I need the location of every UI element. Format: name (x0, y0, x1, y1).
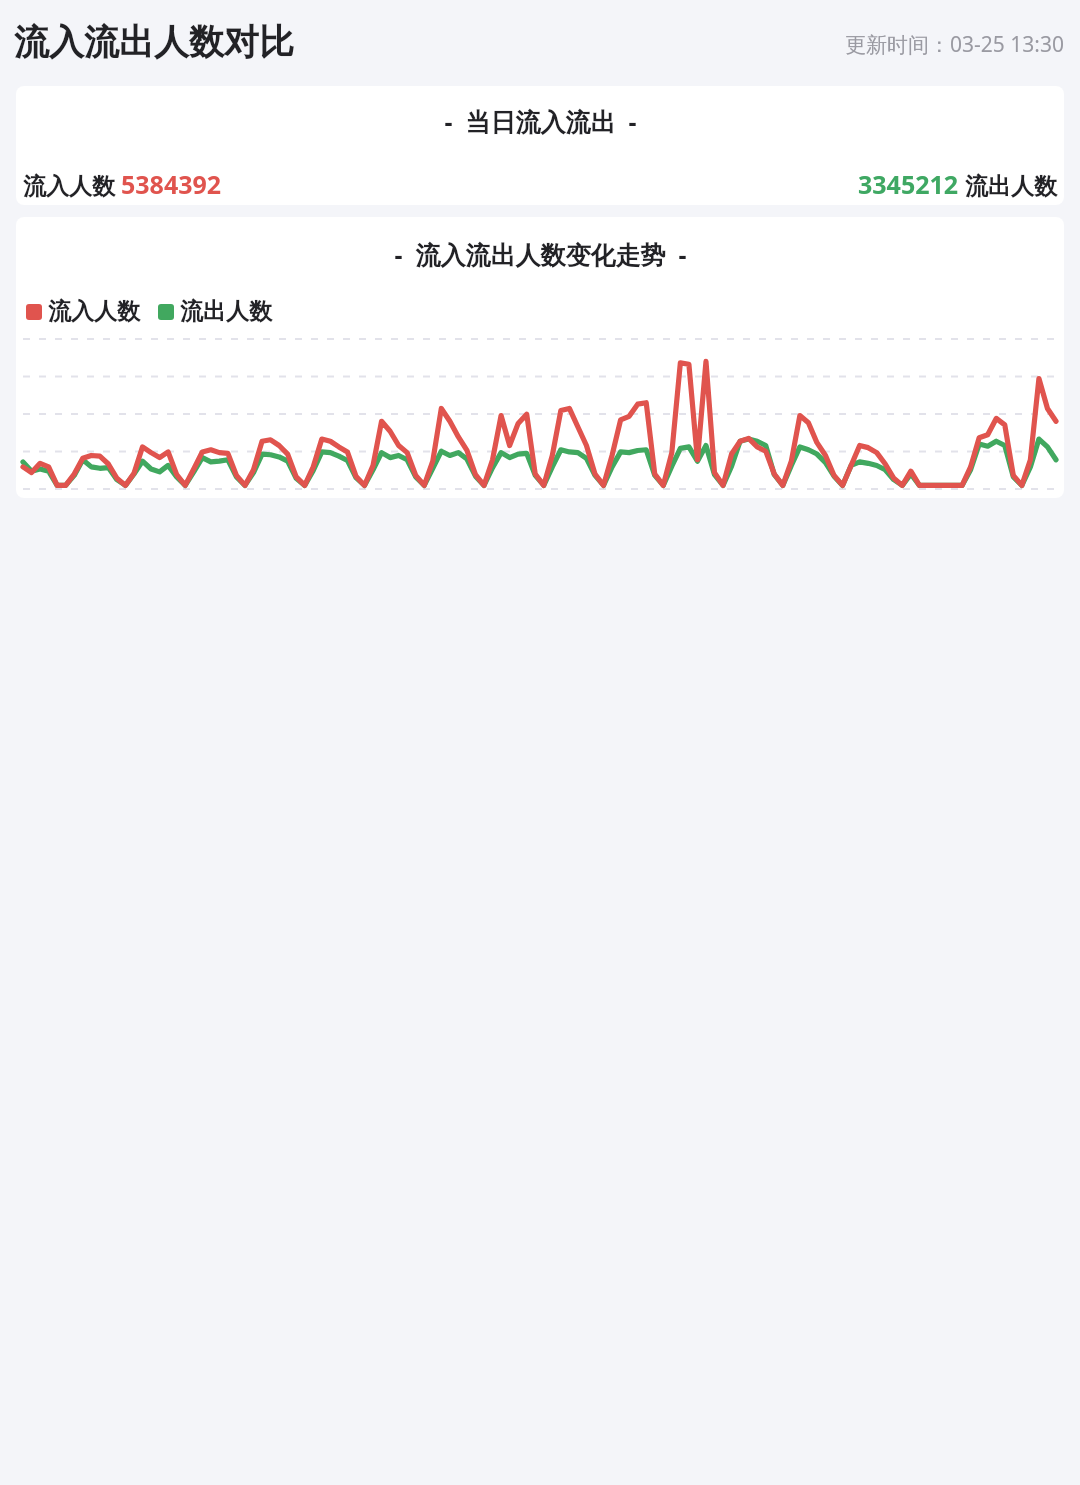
staticText: - 流入流出人数变化走势 - (394, 237, 687, 271)
staticText: 流入人数 (48, 297, 140, 326)
staticText: 5384392 (121, 167, 222, 201)
button[interactable]: 流出人数 (158, 297, 272, 326)
staticText: 流出人数 (959, 169, 1057, 200)
button[interactable]: - 当日流入流出 - (16, 86, 1064, 205)
staticText: 流入流出人数对比 (14, 20, 294, 64)
staticText: 3345212 (858, 167, 959, 201)
other: 流入流出人数变化走势图 (23, 339, 1056, 489)
button[interactable]: 流入人数 (26, 297, 140, 326)
staticText: 流出人数 (180, 297, 272, 326)
staticText: - 当日流入流出 - (444, 104, 637, 138)
button[interactable]: - 流入流出人数变化走势 - (16, 217, 1064, 498)
staticText: 更新时间：03-25 13:30 (845, 30, 1064, 59)
staticText: 流入人数 (23, 169, 121, 200)
